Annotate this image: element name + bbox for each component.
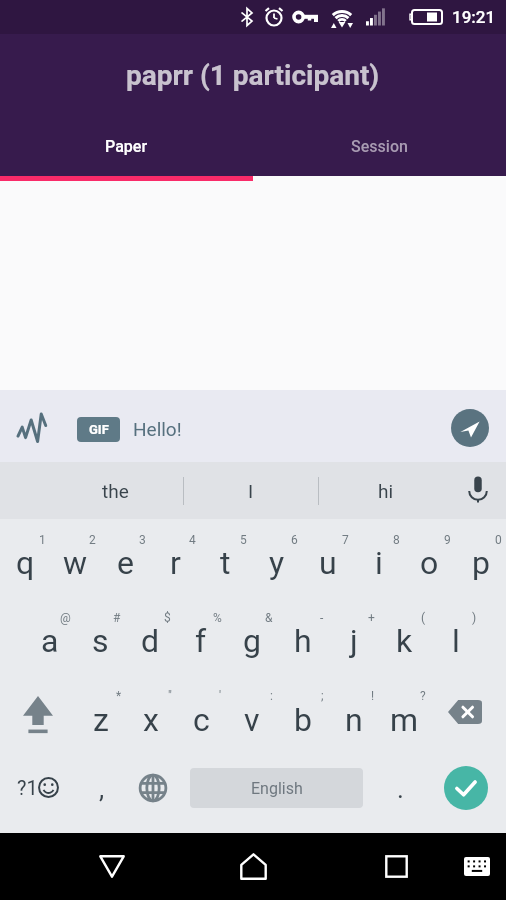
button[interactable]: ' (176, 675, 226, 754)
staticText: 3 (139, 533, 146, 547)
button[interactable] (467, 476, 489, 506)
staticText: # (113, 611, 121, 625)
button[interactable]: 9 (404, 519, 455, 597)
button[interactable]: - (277, 597, 328, 675)
staticText: 0 (495, 533, 502, 547)
staticText: ! (371, 689, 375, 703)
button[interactable] (72, 833, 152, 900)
staticText: d (141, 622, 160, 660)
button[interactable]: English (178, 754, 375, 833)
button[interactable]: % (175, 597, 226, 675)
button[interactable]: 5 (200, 519, 251, 597)
button[interactable] (452, 833, 502, 900)
staticText: l (452, 622, 460, 660)
button[interactable]: ) (430, 597, 481, 675)
staticText: u (319, 544, 337, 582)
staticText: ? (420, 689, 426, 703)
staticText: ) (472, 611, 477, 625)
staticText: r (170, 544, 181, 582)
button[interactable]: # (75, 597, 125, 675)
button[interactable]: ; (277, 675, 328, 754)
staticText: g (243, 622, 261, 660)
button[interactable] (0, 675, 76, 754)
staticText: o (420, 544, 439, 582)
staticText: m (390, 701, 419, 739)
staticText: 9 (444, 533, 451, 547)
staticText: GIF (89, 422, 109, 437)
staticText: English (251, 779, 303, 798)
button[interactable]: 2 (50, 519, 100, 597)
button[interactable]: $ (125, 597, 175, 675)
button[interactable]: 7 (302, 519, 353, 597)
button[interactable]: I (184, 462, 318, 519)
staticText: t (220, 544, 231, 582)
staticText: hi (378, 480, 394, 502)
button[interactable] (430, 675, 506, 754)
button[interactable]: , (76, 754, 127, 833)
staticText: * (116, 689, 122, 703)
button[interactable]: ?1 (0, 754, 76, 833)
button[interactable]: 6 (251, 519, 302, 597)
button[interactable]: 4 (150, 519, 200, 597)
staticText: - (320, 611, 324, 625)
staticText: ' (219, 689, 222, 703)
staticText: w (63, 544, 88, 582)
staticText: 6 (291, 533, 298, 547)
button[interactable]: " (126, 675, 176, 754)
staticText: paprr (1 participant) (126, 59, 380, 92)
button[interactable]: @ (25, 597, 75, 675)
staticText: . (397, 774, 404, 804)
staticText: $ (164, 611, 171, 625)
staticText: i (375, 544, 383, 582)
staticText: % (213, 611, 222, 625)
staticText: n (345, 701, 363, 739)
staticText: 7 (342, 533, 349, 547)
button[interactable]: 1 (0, 519, 50, 597)
staticText: Hello! (133, 418, 182, 440)
button[interactable]: : (226, 675, 277, 754)
button[interactable]: ! (328, 675, 379, 754)
button[interactable]: Paper (0, 116, 253, 176)
staticText: f (195, 622, 207, 660)
staticText: h (294, 622, 312, 660)
button[interactable] (213, 833, 293, 900)
staticText: 4 (189, 533, 196, 547)
staticText: y (269, 544, 285, 582)
staticText: Session (351, 137, 408, 156)
button[interactable]: 8 (353, 519, 404, 597)
button[interactable]: & (226, 597, 277, 675)
button[interactable]: 0 (455, 519, 506, 597)
staticText: 8 (393, 533, 400, 547)
staticText: + (368, 611, 375, 625)
staticText: c (193, 701, 210, 739)
staticText: 2 (89, 533, 96, 547)
button[interactable] (127, 754, 178, 833)
button[interactable]: ( (379, 597, 430, 675)
staticText: v (244, 701, 260, 739)
staticText: 5 (240, 533, 247, 547)
button[interactable]: Session (253, 116, 506, 176)
staticText: e (117, 544, 134, 582)
staticText: a (41, 622, 59, 660)
button[interactable] (426, 754, 506, 833)
button[interactable]: ? (379, 675, 430, 754)
staticText: ; (321, 689, 324, 703)
button[interactable] (18, 413, 46, 445)
button[interactable] (451, 409, 489, 447)
staticText: s (92, 622, 109, 660)
button[interactable]: . (375, 754, 426, 833)
button[interactable] (356, 833, 436, 900)
staticText: q (16, 544, 35, 582)
button[interactable]: + (328, 597, 379, 675)
button[interactable]: GIF (77, 417, 120, 442)
staticText: " (168, 689, 172, 703)
button[interactable]: hi (319, 462, 453, 519)
button[interactable]: the (48, 462, 183, 519)
button[interactable]: * (76, 675, 126, 754)
staticText: @ (60, 611, 71, 625)
staticText: Paper (105, 137, 148, 156)
staticText: x (143, 701, 159, 739)
staticText: k (396, 622, 413, 660)
button[interactable]: 3 (100, 519, 150, 597)
staticText: p (472, 544, 490, 582)
